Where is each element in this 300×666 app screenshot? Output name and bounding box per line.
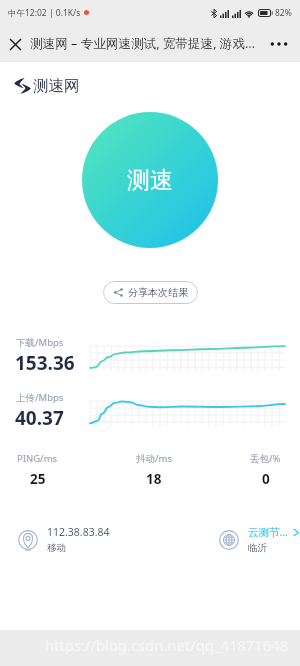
staticText: 抖动/ms: [136, 452, 172, 465]
staticText: PING/ms: [17, 452, 58, 465]
button[interactable]: 测速: [82, 112, 218, 248]
staticText: 上传/Mbps: [16, 391, 64, 404]
staticText: https://blog.csdn.net/qq_41871648: [45, 635, 289, 655]
staticText: 测速网 – 专业网速测试, 宽带提速, 游戏…: [30, 35, 256, 52]
staticText: 临沂: [248, 542, 267, 554]
staticText: 分享本次结果: [128, 286, 188, 299]
staticText: 18: [146, 470, 162, 488]
button[interactable]: 云测节…: [219, 525, 299, 554]
staticText: 测速: [127, 166, 173, 195]
staticText: 移动: [47, 542, 66, 554]
staticText: 测速网: [33, 76, 80, 96]
staticText: 112.38.83.84: [47, 525, 110, 539]
button[interactable]: 分享本次结果: [103, 281, 198, 304]
button[interactable]: Close: [0, 29, 30, 59]
staticText: 25: [30, 470, 46, 488]
staticText: 下载/Mbps: [16, 336, 64, 349]
staticText: 丢包/%: [250, 452, 281, 465]
staticText: 0: [262, 470, 270, 488]
staticText: 中午12:02 | 0.1K/s: [8, 7, 81, 19]
staticText: 40.37: [15, 405, 64, 431]
button[interactable]: 112.38.83.84: [18, 525, 110, 554]
staticText: 云测节…: [248, 525, 288, 539]
staticText: 153.36: [15, 350, 75, 376]
staticText: 82%: [275, 7, 292, 19]
